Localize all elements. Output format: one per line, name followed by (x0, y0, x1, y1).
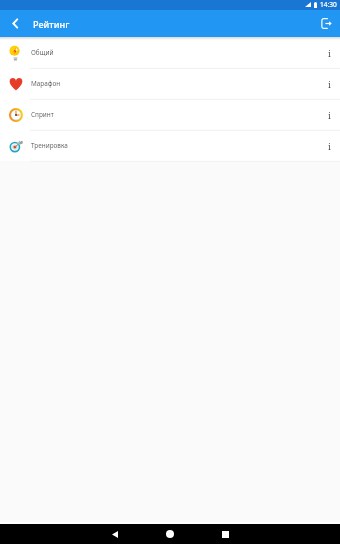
button[interactable]: Recents (216, 525, 234, 543)
staticText: Спринт (31, 110, 54, 119)
button[interactable]: Тренировка (0, 130, 340, 161)
button[interactable]: Спринт (0, 99, 340, 130)
staticText: Общий (31, 48, 54, 57)
button[interactable]: Home (161, 525, 179, 543)
button[interactable]: Log out (313, 10, 340, 37)
staticText: i (328, 78, 331, 90)
button[interactable]: Марафон (0, 68, 340, 99)
button[interactable]: Back (106, 525, 124, 543)
staticText: Рейтинг (33, 18, 70, 30)
button[interactable]: Общий (0, 37, 340, 68)
staticText: Марафон (31, 79, 61, 88)
button[interactable]: Back (0, 10, 31, 37)
staticText: i (328, 47, 331, 59)
staticText: i (328, 140, 331, 152)
staticText: i (328, 109, 331, 121)
staticText: 14:30 (320, 0, 337, 9)
staticText: Тренировка (31, 141, 68, 150)
